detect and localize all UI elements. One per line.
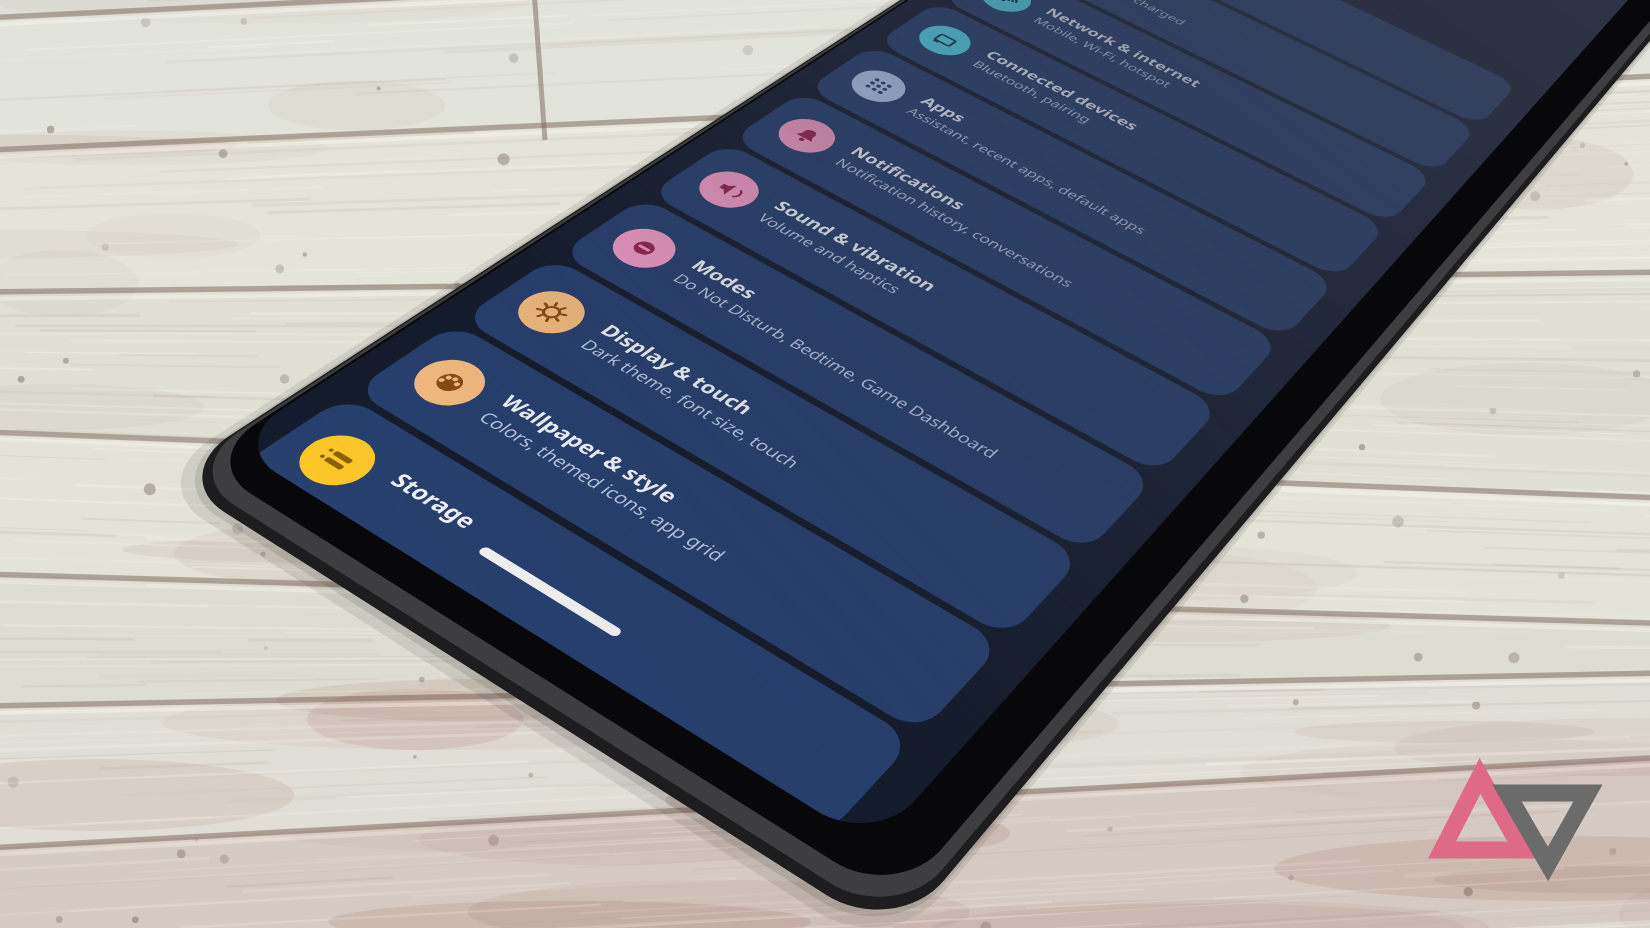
button[interactable] <box>0 0 1650 928</box>
